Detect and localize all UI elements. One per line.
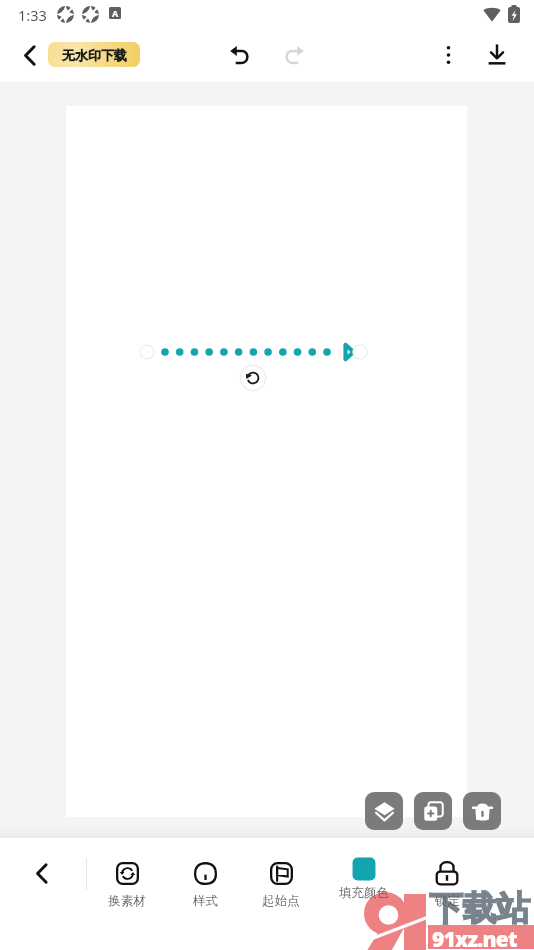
button[interactable]: 锁定 <box>409 855 485 910</box>
button[interactable]: Back <box>9 35 49 75</box>
button[interactable]: Redo <box>272 33 316 77</box>
button[interactable]: Duplicate <box>414 792 452 830</box>
staticText: 换素材 <box>108 893 146 909</box>
staticText: 锁定 <box>435 893 460 909</box>
button[interactable]: 填充颜色 <box>326 855 402 910</box>
button[interactable]: Rotate <box>237 362 269 394</box>
staticText: 填充颜色 <box>339 885 389 901</box>
button[interactable]: Undo <box>217 33 261 77</box>
staticText: 1:33 <box>18 5 47 25</box>
button[interactable]: 起始点 <box>243 855 319 910</box>
button[interactable]: Back <box>21 853 61 893</box>
staticText: 下载站 <box>429 887 530 930</box>
staticText: A <box>112 7 119 19</box>
staticText: 样式 <box>193 893 218 909</box>
button[interactable]: 换素材 <box>89 855 165 910</box>
button[interactable]: More options <box>426 33 470 77</box>
button[interactable]: 样式 <box>167 855 243 910</box>
staticText: 起始点 <box>262 893 300 909</box>
button[interactable]: Delete <box>463 792 501 830</box>
staticText: 91xz.net <box>432 925 517 949</box>
button[interactable]: 无水印下载 <box>48 42 140 67</box>
staticText: 无水印下载 <box>62 47 127 63</box>
button[interactable]: Layers <box>365 792 403 830</box>
button[interactable]: Download <box>475 32 519 76</box>
